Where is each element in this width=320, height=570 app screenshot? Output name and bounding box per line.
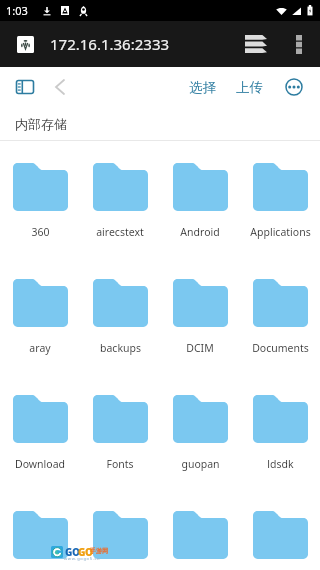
button[interactable]: 选择: [181, 74, 224, 101]
button[interactable]: Applications: [240, 163, 320, 239]
staticText: ldsdk: [267, 457, 294, 471]
staticText: Download: [15, 457, 65, 471]
staticText: GO: [65, 545, 80, 559]
button[interactable]: aray: [0, 279, 80, 355]
button[interactable]: Android: [160, 163, 240, 239]
button[interactable]: Documents: [240, 279, 320, 355]
button[interactable]: [0, 511, 80, 570]
button[interactable]: [160, 511, 240, 570]
staticText: Android: [180, 225, 220, 239]
button[interactable]: Fonts: [80, 395, 160, 471]
button[interactable]: 360: [0, 163, 80, 239]
staticText: 1:03: [6, 3, 28, 18]
staticText: www.gogo5.cn: [64, 556, 101, 561]
staticText: guopan: [181, 457, 220, 471]
button[interactable]: guopan: [160, 395, 240, 471]
staticText: DCIM: [186, 341, 214, 355]
staticText: Documents: [252, 341, 309, 355]
button[interactable]: backups: [80, 279, 160, 355]
staticText: airecstext: [96, 225, 144, 239]
button[interactable]: [80, 511, 160, 570]
button[interactable]: [240, 511, 320, 570]
button[interactable]: Site icon: [17, 36, 34, 53]
button[interactable]: airecstext: [80, 163, 160, 239]
staticText: 选择: [189, 79, 216, 96]
button[interactable]: ldsdk: [240, 395, 320, 471]
staticText: 上传: [236, 79, 263, 96]
button[interactable]: More options: [281, 26, 317, 62]
staticText: 360: [31, 225, 50, 239]
button[interactable]: Tabs: [238, 26, 274, 62]
staticText: Applications: [250, 225, 311, 239]
button[interactable]: Back: [46, 73, 74, 101]
staticText: aray: [29, 341, 51, 355]
staticText: Fonts: [106, 457, 134, 471]
button[interactable]: More: [281, 74, 307, 100]
button[interactable]: Download: [0, 395, 80, 471]
button[interactable]: DCIM: [160, 279, 240, 355]
button[interactable]: Toggle sidebar: [11, 73, 39, 101]
staticText: GO: [78, 545, 93, 559]
staticText: 172.16.1.36:2333: [50, 34, 170, 54]
staticText: backups: [100, 341, 141, 355]
button[interactable]: 上传: [228, 74, 271, 101]
staticText: 手游网: [90, 547, 108, 555]
staticText: 内部存储: [15, 116, 67, 132]
